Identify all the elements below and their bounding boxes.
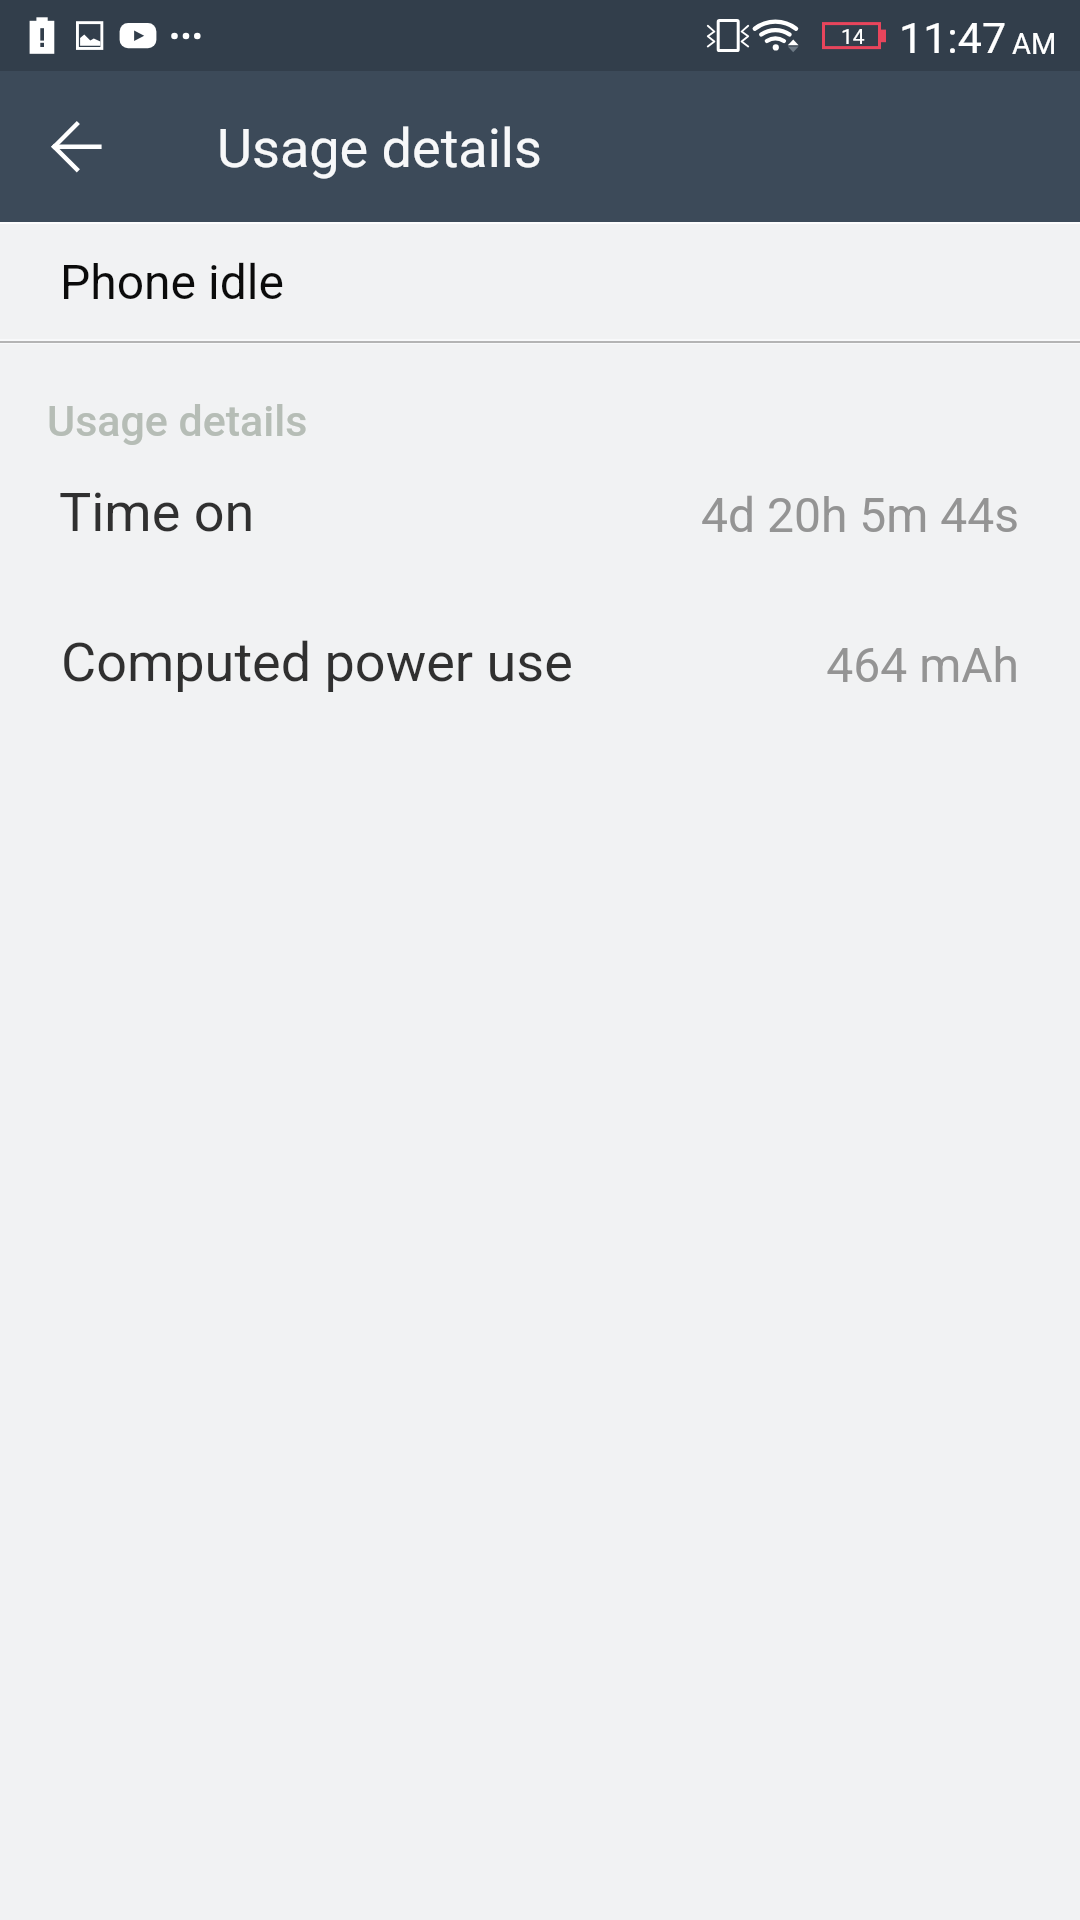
staticText: 4d 20h 5m 44s bbox=[0, 487, 1019, 543]
staticText: 464 mAh bbox=[0, 637, 1019, 693]
staticText: Usage details bbox=[47, 396, 308, 446]
button[interactable]: Time on bbox=[0, 456, 1080, 606]
staticText: 14 bbox=[841, 25, 865, 50]
button[interactable]: Computed power use bbox=[0, 606, 1080, 756]
staticText: AM bbox=[1012, 27, 1057, 61]
staticText: Computed power use bbox=[61, 631, 573, 694]
staticText: Usage details bbox=[217, 117, 542, 180]
staticText: Phone idle bbox=[60, 254, 284, 310]
button[interactable]: Phone idle bbox=[0, 222, 1080, 341]
button[interactable]: Back bbox=[29, 99, 124, 194]
staticText: 11:47 bbox=[899, 13, 1007, 63]
staticText: Time on bbox=[59, 481, 255, 544]
